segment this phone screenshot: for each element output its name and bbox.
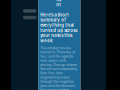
staticText: Here's a short summary of everything tha…	[40, 12, 77, 43]
staticText: The product review moved to Thursday at …	[40, 46, 77, 90]
staticText: Assistant	[56, 0, 63, 7]
